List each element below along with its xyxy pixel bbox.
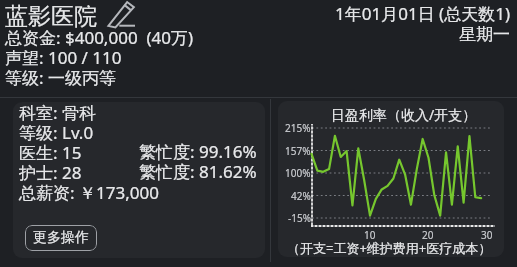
staticText: 100% (285, 166, 311, 180)
button[interactable]: 编辑名称 (104, 0, 138, 30)
staticText: 科室: 骨科 等级: Lv.0 医生: 15 护士: 28 总薪资: ￥173,… (19, 102, 159, 205)
staticText: 10 (364, 228, 376, 241)
staticText: 30 (481, 228, 493, 241)
staticText: -15% (288, 211, 311, 225)
staticText: 更多操作 (33, 229, 89, 247)
staticText: 总资金: $400,000 (40万) 声望: 100 / 110 等级: 一级… (5, 26, 194, 90)
staticText: 157% (285, 144, 311, 158)
button[interactable]: 更多操作 (25, 225, 97, 251)
staticText: 20 (422, 228, 434, 241)
staticText: 215% (285, 121, 311, 135)
staticText: 42% (291, 189, 311, 203)
staticText: 繁忙度: 99.16% 繁忙度: 81.62% (139, 140, 257, 184)
staticText: 日盈利率（收入/开支） (331, 105, 477, 124)
staticText: 1年01月01日 (总天数1) 星期一 (335, 2, 510, 45)
staticText: 蓝影医院 (5, 2, 97, 31)
staticText: （开支=工资+维护费用+医疗成本） (287, 239, 492, 257)
